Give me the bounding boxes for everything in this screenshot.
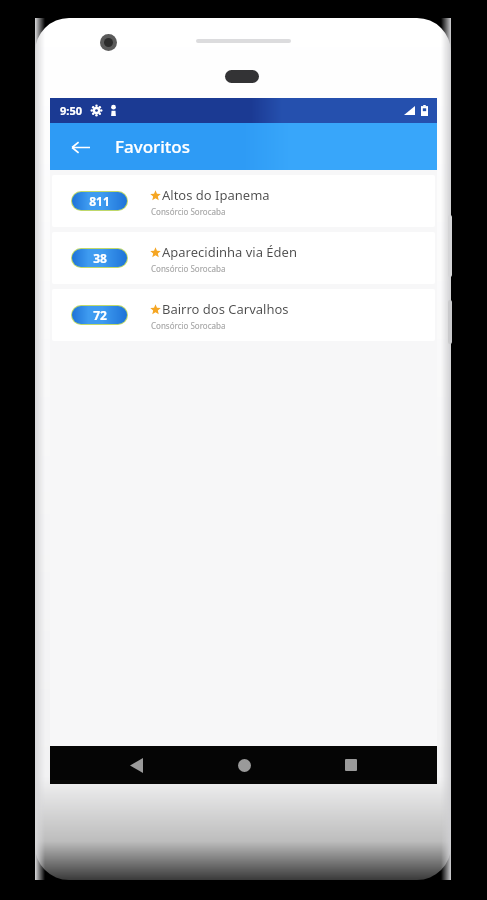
button[interactable]: Back: [60, 127, 100, 167]
staticText: 38: [93, 250, 107, 266]
button[interactable]: 811: [52, 175, 435, 227]
staticText: Bairro dos Carvalhos: [162, 300, 289, 318]
button[interactable]: Recents: [329, 746, 373, 784]
staticText: 72: [93, 307, 107, 323]
button[interactable]: Back: [114, 746, 158, 784]
staticText: Altos do Ipanema: [162, 186, 270, 204]
staticText: Consórcio Sorocaba: [151, 320, 226, 331]
staticText: Favoritos: [115, 135, 190, 158]
staticText: Consórcio Sorocaba: [151, 206, 226, 217]
button[interactable]: Home: [222, 746, 266, 784]
staticText: 811: [89, 193, 110, 209]
staticText: Consórcio Sorocaba: [151, 263, 226, 274]
staticText: 9:50: [60, 103, 82, 118]
button[interactable]: 72: [52, 289, 435, 341]
button[interactable]: 38: [52, 232, 435, 284]
staticText: Aparecidinha via Éden: [162, 243, 297, 261]
